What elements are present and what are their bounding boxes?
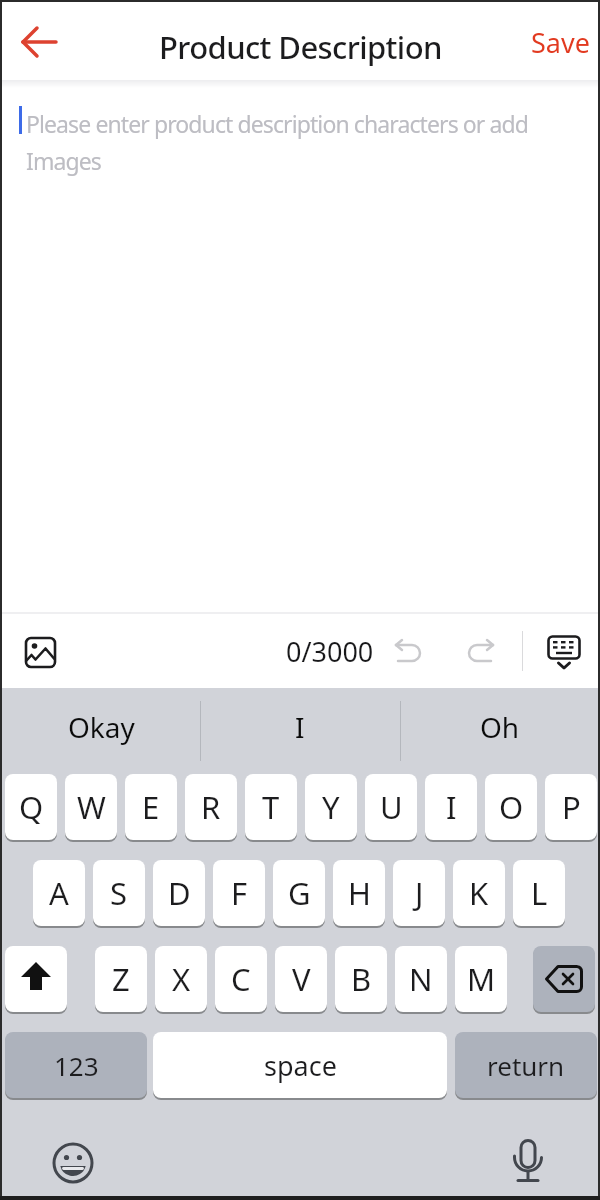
staticText: O: [499, 786, 524, 828]
button[interactable]: K: [453, 860, 505, 926]
staticText: Q: [19, 786, 44, 828]
staticText: X: [172, 958, 191, 1000]
staticText: Okay: [68, 708, 135, 746]
button[interactable]: T: [245, 774, 297, 840]
button[interactable]: return: [455, 1032, 597, 1098]
staticText: Save: [531, 24, 590, 61]
button[interactable]: [385, 630, 429, 674]
staticText: L: [531, 872, 548, 914]
button[interactable]: A: [33, 860, 85, 926]
button[interactable]: Okay: [2, 688, 200, 765]
staticText: Oh: [480, 708, 520, 746]
button[interactable]: Save: [520, 16, 600, 68]
button[interactable]: space: [153, 1032, 447, 1098]
button[interactable]: Z: [95, 946, 147, 1012]
staticText: U: [380, 786, 403, 828]
staticText: P: [562, 786, 581, 828]
button[interactable]: X: [155, 946, 207, 1012]
staticText: A: [49, 872, 69, 914]
button[interactable]: [538, 628, 590, 678]
button[interactable]: F: [213, 860, 265, 926]
staticText: Product Description: [159, 26, 442, 68]
staticText: N: [409, 958, 433, 1000]
staticText: E: [142, 786, 160, 828]
staticText: Please enter product description charact…: [26, 108, 529, 139]
button[interactable]: C: [215, 946, 267, 1012]
button[interactable]: [48, 1138, 98, 1188]
staticText: G: [288, 872, 311, 914]
staticText: C: [231, 958, 251, 1000]
button[interactable]: I: [201, 688, 399, 765]
button[interactable]: Q: [5, 774, 57, 840]
staticText: return: [487, 1048, 565, 1083]
button[interactable]: U: [365, 774, 417, 840]
button[interactable]: [533, 946, 595, 1012]
button[interactable]: 123: [5, 1032, 147, 1098]
button[interactable]: M: [455, 946, 507, 1012]
button[interactable]: S: [93, 860, 145, 926]
staticText: Z: [112, 958, 130, 1000]
button[interactable]: Y: [305, 774, 357, 840]
staticText: M: [467, 958, 496, 1000]
staticText: H: [348, 872, 371, 914]
button[interactable]: E: [125, 774, 177, 840]
staticText: I: [295, 708, 305, 746]
staticText: K: [469, 872, 489, 914]
button[interactable]: [460, 630, 504, 674]
button[interactable]: W: [65, 774, 117, 840]
button[interactable]: [10, 16, 70, 72]
staticText: F: [231, 872, 248, 914]
staticText: S: [110, 872, 128, 914]
button[interactable]: Oh: [401, 688, 598, 765]
staticText: J: [415, 872, 424, 914]
button[interactable]: [16, 628, 64, 676]
staticText: I: [446, 786, 457, 828]
button[interactable]: G: [273, 860, 325, 926]
button[interactable]: O: [485, 774, 537, 840]
button[interactable]: [503, 1136, 553, 1188]
staticText: 0/3000: [286, 633, 374, 670]
staticText: V: [292, 958, 311, 1000]
button[interactable]: V: [275, 946, 327, 1012]
button[interactable]: H: [333, 860, 385, 926]
button[interactable]: B: [335, 946, 387, 1012]
staticText: Y: [322, 786, 340, 828]
button[interactable]: D: [153, 860, 205, 926]
button[interactable]: N: [395, 946, 447, 1012]
staticText: space: [264, 1047, 337, 1084]
button[interactable]: J: [393, 860, 445, 926]
button[interactable]: [5, 946, 67, 1012]
staticText: T: [262, 786, 280, 828]
button[interactable]: I: [425, 774, 477, 840]
staticText: Images: [26, 145, 101, 176]
button[interactable]: P: [545, 774, 597, 840]
staticText: R: [201, 786, 221, 828]
button[interactable]: L: [513, 860, 565, 926]
staticText: W: [77, 786, 106, 828]
staticText: B: [351, 958, 372, 1000]
staticText: 123: [54, 1048, 99, 1083]
button[interactable]: R: [185, 774, 237, 840]
staticText: D: [168, 872, 191, 914]
